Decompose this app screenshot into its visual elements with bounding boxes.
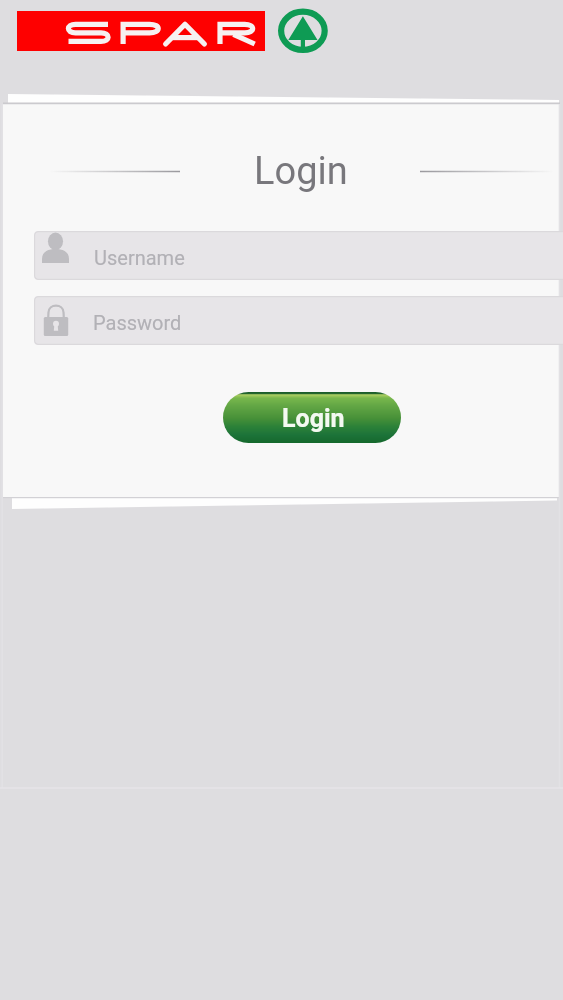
staticText: Username [94, 246, 185, 269]
staticText: Password [93, 311, 182, 334]
staticText: Login [254, 149, 348, 194]
staticText: Login [282, 404, 345, 433]
button[interactable]: SPAR [17, 11, 265, 51]
button[interactable]: Username [34, 231, 563, 280]
button[interactable]: Login [223, 392, 401, 443]
button[interactable]: Password [34, 296, 563, 345]
